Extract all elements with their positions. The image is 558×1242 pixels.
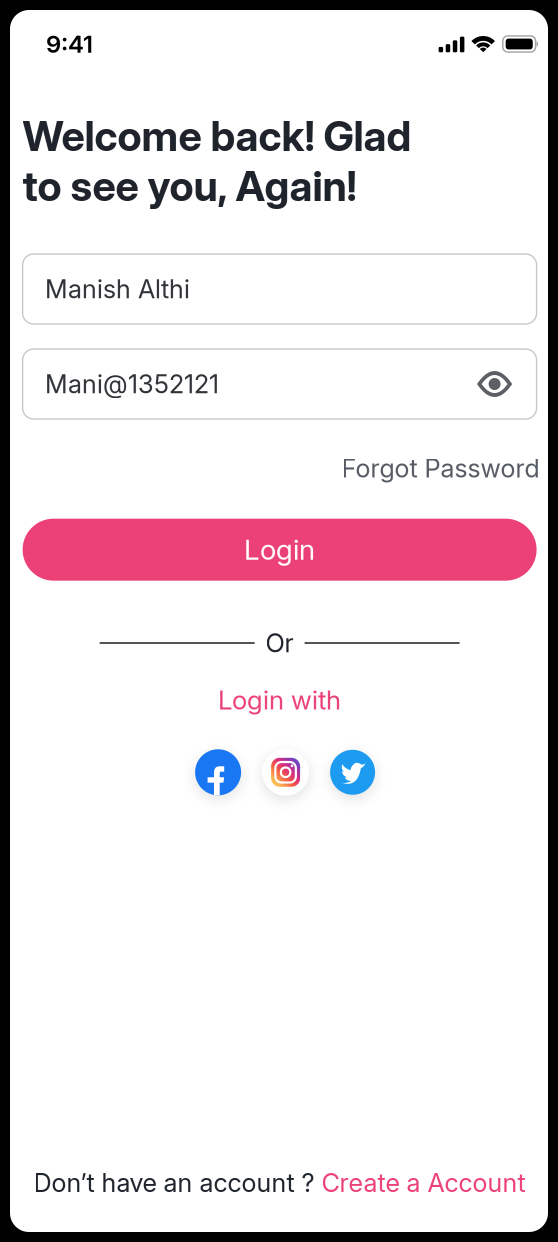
button[interactable]: Manish Althi <box>23 254 537 324</box>
button[interactable]: Forgot Password <box>23 419 537 484</box>
button[interactable]: Login <box>23 519 537 581</box>
staticText: Or <box>266 628 294 658</box>
button[interactable]: Log in with Facebook <box>195 749 241 795</box>
staticText: Login with <box>218 684 341 716</box>
staticText: 9:41 <box>46 29 93 58</box>
button[interactable]: Create a Account <box>322 1167 526 1198</box>
staticText: Login <box>244 533 315 567</box>
staticText: Don’t have an account ? <box>34 1167 322 1198</box>
button[interactable]: Log in with Twitter <box>330 750 375 795</box>
button[interactable]: Log in with Instagram <box>262 749 309 796</box>
staticText: Welcome back! Glad to see you, Again! <box>23 111 412 211</box>
staticText: Manish Althi <box>45 274 190 304</box>
staticText: Mani@1352121 <box>45 369 219 399</box>
staticText: Forgot Password <box>342 453 540 484</box>
staticText: Create a Account <box>322 1167 526 1198</box>
button[interactable]: Mani@1352121 <box>23 349 537 419</box>
